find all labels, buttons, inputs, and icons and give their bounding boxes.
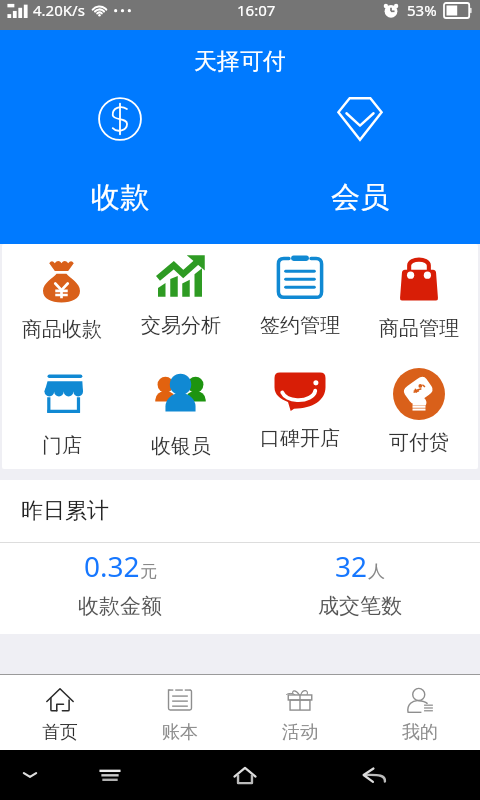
staticText: 0.32 (84, 547, 140, 585)
button[interactable]: 门店 (2, 358, 121, 469)
staticText: 活动 (282, 721, 318, 744)
button[interactable]: 我的 (360, 675, 480, 750)
button[interactable]: 首页 (0, 675, 120, 750)
staticText: 门店 (42, 433, 82, 458)
staticText: 4.20K/s (33, 0, 85, 20)
button[interactable]: 收款 (0, 94, 240, 216)
button[interactable]: Back (355, 750, 393, 800)
staticText: 元 (140, 561, 157, 582)
staticText: 账本 (162, 721, 198, 744)
staticText: 53% (407, 0, 437, 20)
staticText: 商品收款 (22, 317, 102, 342)
staticText: 天择可付 (194, 47, 286, 76)
button[interactable]: 活动 (240, 675, 360, 750)
button[interactable]: 0.32 (0, 543, 240, 634)
button[interactable]: Recent apps (90, 750, 130, 800)
staticText: 32 (335, 547, 368, 585)
button[interactable]: 口碑开店 (240, 358, 359, 469)
staticText: 会员 (331, 179, 389, 216)
button[interactable]: 会员 (240, 94, 480, 216)
staticText: 成交笔数 (318, 593, 402, 619)
button[interactable]: 商品收款 (2, 244, 121, 358)
staticText: 人 (368, 561, 385, 582)
button[interactable]: 交易分析 (121, 244, 240, 358)
staticText: 收银员 (151, 434, 211, 459)
staticText: 交易分析 (141, 313, 221, 338)
button[interactable]: Collapse keyboard (14, 750, 46, 800)
staticText: 收款 (91, 179, 149, 216)
staticText: 昨日累计 (21, 497, 109, 525)
staticText: 收款金额 (78, 593, 162, 619)
button[interactable]: 收银员 (121, 358, 240, 469)
staticText: 可付贷 (389, 430, 449, 455)
staticText: 首页 (42, 721, 78, 744)
staticText: 商品管理 (379, 316, 459, 341)
button[interactable]: 签约管理 (240, 244, 359, 358)
staticText: 口碑开店 (260, 426, 340, 451)
staticText: 16:07 (237, 0, 276, 20)
button[interactable]: Home (226, 750, 264, 800)
staticText: 签约管理 (260, 313, 340, 338)
staticText: 我的 (402, 721, 438, 744)
button[interactable]: 可付贷 (359, 358, 478, 469)
button[interactable]: 商品管理 (359, 244, 478, 358)
button[interactable]: 账本 (120, 675, 240, 750)
button[interactable]: 32 (240, 543, 480, 634)
